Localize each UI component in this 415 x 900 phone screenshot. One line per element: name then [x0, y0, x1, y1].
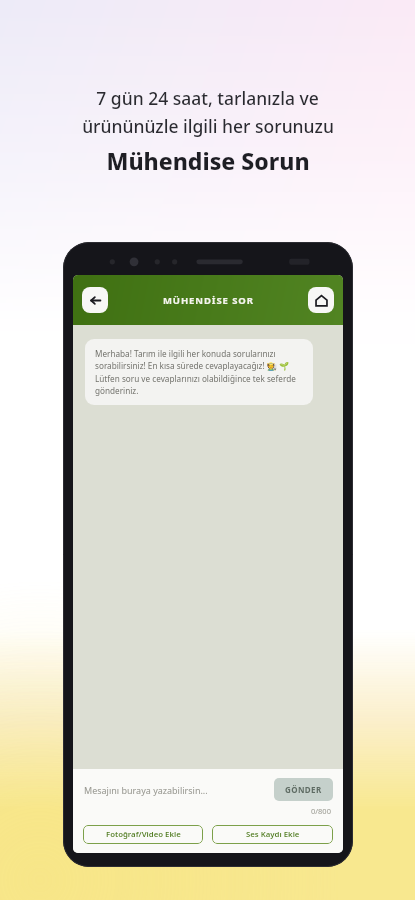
staticText: Mühendise Sorun: [106, 145, 310, 176]
staticText: 0/800: [311, 806, 331, 816]
staticText: Ses Kaydı Ekle: [246, 829, 300, 840]
button[interactable]: Back: [82, 287, 108, 313]
staticText: ürününüzle ilgili her sorunuzu: [82, 114, 334, 138]
button[interactable]: GÖNDER: [274, 778, 333, 801]
button[interactable]: Fotoğraf/Video Ekle: [83, 825, 203, 844]
staticText: 7 gün 24 saat, tarlanızla ve: [96, 86, 319, 110]
staticText: Fotoğraf/Video Ekle: [106, 829, 181, 840]
staticText: GÖNDER: [285, 784, 322, 795]
button[interactable]: Home: [308, 287, 334, 313]
button[interactable]: Ses Kaydı Ekle: [212, 825, 333, 844]
staticText: Mesajını buraya yazabilirsin...: [84, 784, 208, 796]
staticText: Merhaba! Tarım ile ilgili her konuda sor…: [95, 348, 303, 396]
staticText: MÜHENDİSE SOR: [163, 294, 254, 307]
button[interactable]: Mesajını buraya yazabilirsin...: [84, 784, 274, 796]
